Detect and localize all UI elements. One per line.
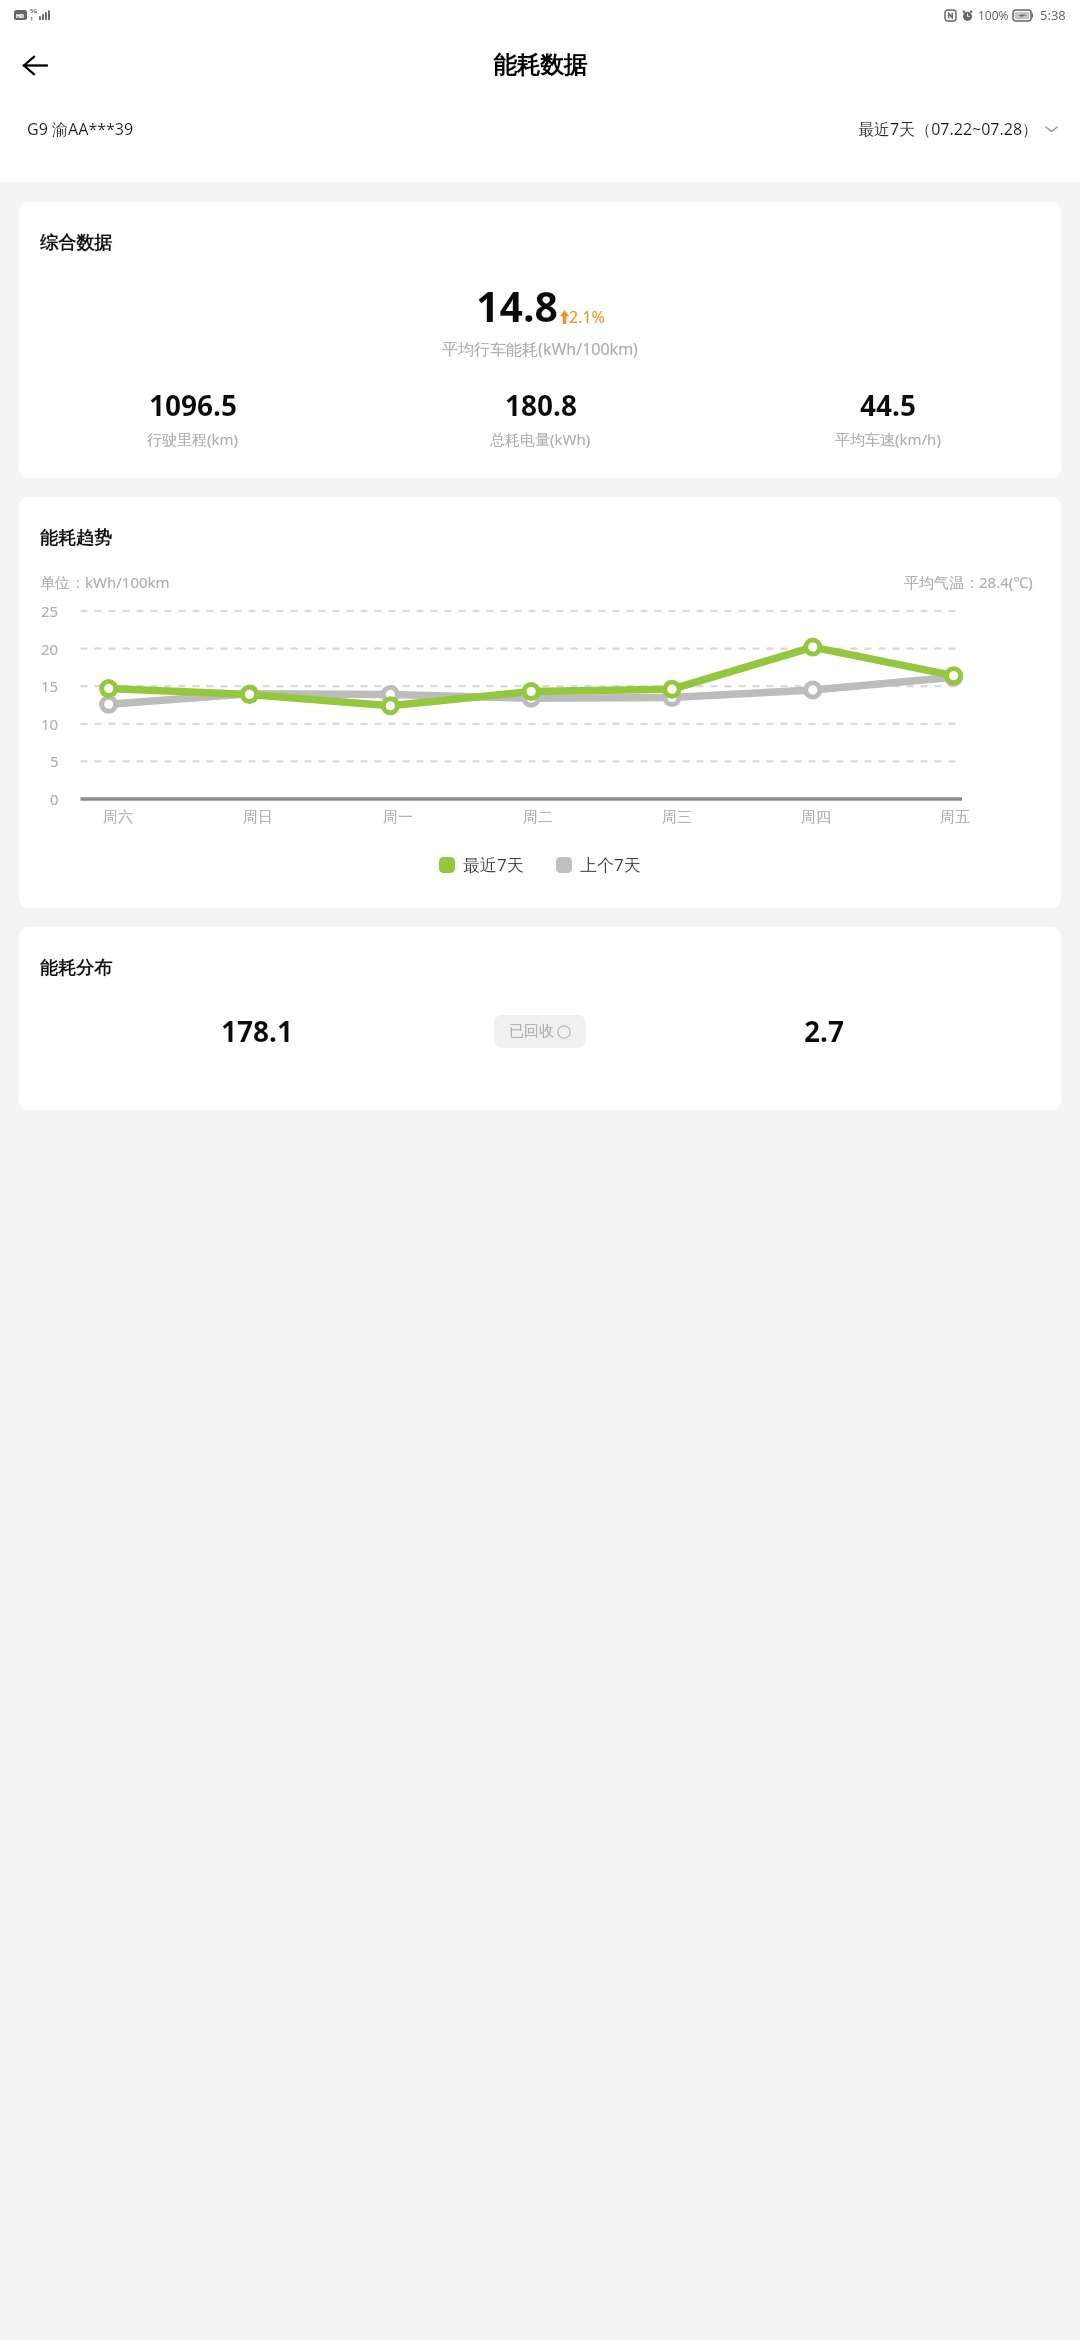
staticText: 周六 — [103, 808, 133, 827]
staticText: 能耗数据 — [493, 50, 587, 80]
staticText: 2.1% — [569, 306, 605, 328]
button[interactable]: 最近7天 — [439, 853, 524, 876]
staticText: 15 — [41, 676, 59, 696]
staticText: 周四 — [801, 808, 831, 827]
staticText: 平均气温：28.4(℃) — [904, 572, 1033, 592]
button[interactable]: Back — [8, 38, 62, 92]
staticText: 1096.5 — [149, 386, 237, 424]
staticText: 100% — [978, 7, 1009, 23]
staticText: HD — [16, 12, 25, 19]
staticText: 44.5 — [860, 386, 916, 424]
staticText: 178.1 — [221, 1012, 293, 1050]
staticText: 0 — [50, 789, 59, 809]
staticText: 能耗分布 — [40, 957, 112, 980]
staticText: 14.8 — [476, 278, 558, 334]
staticText: 180.8 — [505, 386, 577, 424]
staticText: 上个7天 — [580, 853, 641, 876]
staticText: 周二 — [523, 808, 553, 827]
staticText: 最近7天 — [463, 853, 524, 876]
staticText: 5G — [30, 7, 38, 15]
button[interactable]: 上个7天 — [556, 853, 641, 876]
staticText: G9 渝AA***39 — [27, 118, 134, 140]
staticText: 已回收 — [509, 1022, 554, 1041]
staticText: 周五 — [940, 808, 970, 827]
staticText: 综合数据 — [40, 232, 112, 255]
staticText: 周一 — [383, 808, 413, 827]
staticText: 周日 — [243, 808, 273, 827]
button[interactable]: 已回收 — [494, 1015, 586, 1048]
staticText: 平均行车能耗(kWh/100km) — [19, 338, 1061, 360]
staticText: 10 — [41, 714, 59, 734]
staticText: 最近7天（07.22~07.28） — [858, 118, 1039, 140]
staticText: 1 — [30, 15, 34, 22]
button[interactable]: 最近7天（07.22~07.28） — [858, 118, 1060, 140]
staticText: 单位：kWh/100km — [40, 572, 170, 592]
staticText: 能耗趋势 — [40, 527, 112, 550]
staticText: 5 — [50, 751, 59, 771]
staticText: 行驶里程(km) — [147, 429, 239, 449]
staticText: 2.7 — [804, 1012, 844, 1050]
staticText: 25 — [41, 601, 59, 621]
staticText: 总耗电量(kWh) — [490, 429, 591, 449]
staticText: 周三 — [662, 808, 692, 827]
staticText: 5:38 — [1040, 6, 1066, 24]
staticText: 20 — [41, 639, 59, 659]
staticText: 平均车速(km/h) — [835, 429, 941, 449]
